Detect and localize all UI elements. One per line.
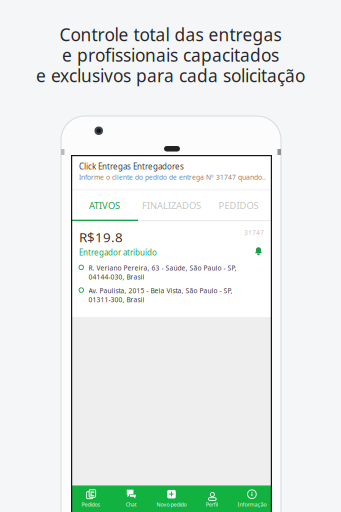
- staticText: Av. Paulista, 2015 - Bela Vista, São Pau…: [88, 286, 232, 295]
- staticText: Informe o cliente do pedido de entrega N…: [79, 173, 266, 181]
- staticText: Chat: [126, 501, 137, 508]
- button[interactable]: FINALIZADOS: [138, 190, 205, 220]
- button[interactable]: Chat: [111, 485, 151, 512]
- button[interactable]: Pedidos: [71, 485, 111, 512]
- staticText: Informação: [237, 501, 266, 508]
- staticText: Click Entregas Entregadores: [79, 161, 184, 172]
- staticText: Novo pedido: [156, 501, 186, 508]
- staticText: Entregador atribuído: [79, 247, 157, 258]
- staticText: e exclusivos para cada solicitação: [36, 64, 305, 87]
- button[interactable]: Perfil: [192, 485, 232, 512]
- staticText: R$19.8: [79, 228, 123, 246]
- staticText: 01311-300, Brasil: [88, 295, 144, 304]
- staticText: Perfil: [206, 501, 218, 508]
- button[interactable]: Novo pedido: [151, 485, 192, 512]
- staticText: e profissionais capacitados: [62, 43, 279, 66]
- button[interactable]: Informação: [232, 485, 272, 512]
- staticText: R. Veriano Pereira, 63 - Saúde, São Paul…: [88, 264, 236, 272]
- button[interactable]: ATIVOS: [71, 190, 138, 220]
- staticText: PEDIDOS: [218, 199, 258, 212]
- staticText: 31747: [244, 228, 264, 237]
- staticText: ATIVOS: [89, 199, 120, 212]
- button[interactable]: PEDIDOS: [205, 190, 272, 220]
- staticText: FINALIZADOS: [142, 199, 201, 212]
- staticText: Controle total das entregas: [59, 23, 281, 46]
- staticText: 04144-030, Brasil: [88, 272, 144, 281]
- staticText: Pedidos: [82, 501, 101, 508]
